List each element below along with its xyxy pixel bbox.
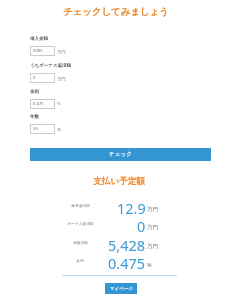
staticText: うちボーナス返済額 bbox=[30, 63, 72, 69]
staticText: 5000 bbox=[33, 48, 43, 54]
staticText: 年数 bbox=[30, 114, 39, 120]
staticText: 0.475 bbox=[33, 101, 44, 107]
staticText: 35 bbox=[33, 126, 38, 132]
staticText: 0 bbox=[33, 75, 36, 81]
button[interactable]: ボーナス返済額 bbox=[40, 221, 120, 234]
staticText: 年 bbox=[57, 127, 62, 132]
staticText: 万円 bbox=[147, 243, 158, 250]
button[interactable]: 毎月返済額 bbox=[40, 203, 120, 216]
staticText: チェック bbox=[109, 151, 132, 158]
staticText: チェックしてみましょう bbox=[63, 6, 169, 18]
staticText: 金利 bbox=[76, 258, 84, 263]
staticText: 借入金額 bbox=[30, 36, 48, 42]
button[interactable]: マイページ bbox=[105, 283, 137, 294]
button[interactable]: 0 bbox=[30, 73, 55, 83]
staticText: 万円 bbox=[57, 49, 66, 54]
staticText: 金利 bbox=[30, 89, 39, 95]
staticText: 万円 bbox=[147, 224, 158, 231]
button[interactable]: 0.475 bbox=[30, 99, 55, 109]
staticText: 毎月返済額 bbox=[71, 203, 90, 208]
staticText: マイページ bbox=[110, 286, 133, 292]
button[interactable]: 35 bbox=[30, 124, 55, 134]
staticText: 支払い予定額 bbox=[93, 176, 145, 187]
staticText: 5,428 bbox=[108, 235, 146, 255]
staticText: 総返済額 bbox=[73, 240, 88, 245]
button[interactable]: 5000 bbox=[30, 46, 55, 56]
staticText: 0.475 bbox=[108, 253, 146, 273]
button[interactable]: 金利 bbox=[40, 258, 120, 271]
staticText: % bbox=[57, 101, 61, 107]
staticText: 12.9 bbox=[117, 198, 146, 218]
staticText: 万円 bbox=[147, 206, 158, 213]
staticText: 万円 bbox=[57, 76, 66, 81]
staticText: ボーナス返済額 bbox=[67, 221, 94, 226]
button[interactable]: 総返済額 bbox=[40, 240, 120, 253]
staticText: % bbox=[147, 261, 152, 268]
staticText: 0 bbox=[137, 216, 146, 236]
button[interactable]: チェック bbox=[30, 148, 211, 161]
